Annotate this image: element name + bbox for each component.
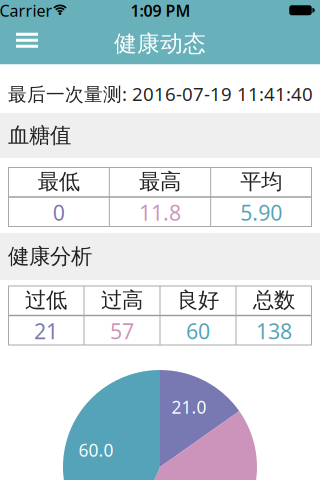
staticText: 57 xyxy=(110,317,134,345)
staticText: 过高 xyxy=(101,287,143,313)
staticText: 血糖值 xyxy=(8,122,71,149)
staticText: 健康分析 xyxy=(8,243,92,270)
staticText: 5.90 xyxy=(240,198,282,227)
staticText: 60.0 xyxy=(78,438,113,461)
button[interactable]: Menu xyxy=(0,22,54,62)
staticText: 21 xyxy=(34,317,58,345)
staticText: 1:09 PM xyxy=(130,0,190,21)
staticText: 最低 xyxy=(38,168,80,195)
staticText: 过低 xyxy=(25,287,67,313)
staticText: Carrier xyxy=(0,0,52,21)
staticText: 60 xyxy=(186,317,210,345)
staticText: 21.0 xyxy=(171,395,206,418)
staticText: 最后一次量测: 2016-07-19 11:41:40 xyxy=(8,81,313,106)
staticText: 健康动态 xyxy=(114,30,206,58)
button[interactable]: 最后一次量测: 2016-07-19 11:41:40 xyxy=(0,64,320,113)
staticText: 138 xyxy=(256,317,292,345)
staticText: 0 xyxy=(53,198,65,227)
staticText: 11.8 xyxy=(139,198,181,227)
staticText: 最高 xyxy=(139,168,181,195)
staticText: 总数 xyxy=(253,287,295,313)
staticText: 良好 xyxy=(177,287,219,313)
staticText: 平均 xyxy=(240,168,282,195)
